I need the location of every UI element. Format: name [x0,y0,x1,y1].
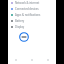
button[interactable]: Apps & notifications [8,12,56,18]
button[interactable]: Home [8,56,24,64]
staticText: Connected devices [15,7,39,11]
button[interactable]: Settings [40,56,56,64]
other: Progress [19,32,29,42]
staticText: Network & internet [15,1,40,5]
button[interactable]: Connected devices [8,6,56,12]
button[interactable]: Search [24,56,40,64]
button[interactable]: Display [8,24,56,30]
button[interactable]: Battery [8,18,56,24]
staticText: Display [15,25,25,29]
staticText: Apps & notifications [15,13,41,17]
button[interactable]: Network & internet [8,0,56,6]
staticText: Battery [15,19,25,23]
